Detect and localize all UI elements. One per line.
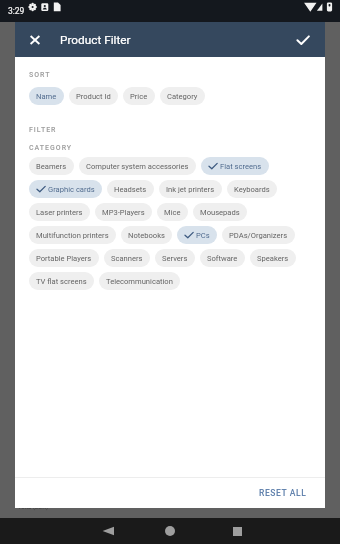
staticText: MP3-Players [102, 208, 145, 217]
button[interactable]: Mice [157, 203, 188, 221]
staticText: Notebooks [128, 231, 165, 240]
button[interactable]: Graphic cards [29, 180, 102, 198]
staticText: Total (EUR) [18, 503, 49, 510]
button[interactable]: Name [29, 87, 64, 105]
button[interactable]: Flat screens [201, 157, 269, 175]
button[interactable]: Close [19, 24, 50, 55]
staticText: Software [207, 254, 238, 263]
button[interactable]: Speakers [250, 249, 296, 267]
button[interactable]: Home [157, 518, 183, 544]
button[interactable]: Software [200, 249, 245, 267]
button[interactable]: Laser printers [29, 203, 90, 221]
button[interactable]: PDAs/Organizers [222, 226, 295, 244]
staticText: Laser printers [36, 208, 83, 217]
button[interactable]: Keyboards [227, 180, 277, 198]
staticText: RESET ALL [259, 488, 307, 498]
button[interactable]: Headsets [107, 180, 154, 198]
button[interactable]: Multifunction printers [29, 226, 116, 244]
staticText: Speakers [257, 254, 289, 263]
button[interactable]: Recents [224, 518, 250, 544]
button[interactable]: Portable Players [29, 249, 99, 267]
button[interactable]: MP3-Players [95, 203, 152, 221]
button[interactable]: Beamers [29, 157, 74, 175]
staticText: TV flat screens [36, 277, 87, 286]
staticText: Scanners [111, 254, 143, 263]
button[interactable]: Telecommunication [99, 272, 180, 290]
staticText: FILTER [29, 126, 57, 134]
staticText: Beamers [36, 162, 67, 171]
staticText: Computer system accessories [86, 162, 189, 171]
button[interactable]: RESET ALL [253, 483, 313, 503]
button[interactable]: Category [160, 87, 205, 105]
staticText: Multifunction printers [36, 231, 109, 240]
button[interactable]: TV flat screens [29, 272, 94, 290]
staticText: Graphic cards [48, 185, 95, 194]
button[interactable]: Servers [155, 249, 195, 267]
staticText: PCs [196, 231, 210, 240]
staticText: Servers [162, 254, 188, 263]
staticText: Telecommunication [106, 277, 173, 286]
staticText: Name [36, 92, 57, 101]
button[interactable]: Back [95, 518, 121, 544]
staticText: Product Filter [60, 33, 131, 47]
staticText: PDAs/Organizers [229, 231, 288, 240]
staticText: Price [130, 92, 148, 101]
staticText: Product Id [76, 92, 111, 101]
staticText: Mice [164, 208, 181, 217]
staticText: CATEGORY [29, 144, 73, 152]
staticText: Category [167, 92, 198, 101]
staticText: Headsets [114, 185, 147, 194]
button[interactable]: Product Id [69, 87, 118, 105]
button[interactable]: PCs [177, 226, 217, 244]
button[interactable]: Scanners [104, 249, 150, 267]
button[interactable]: Ink jet printers [159, 180, 222, 198]
staticText: Flat screens [220, 162, 262, 171]
button[interactable]: Apply [287, 24, 318, 55]
staticText: Ink jet printers [166, 185, 215, 194]
staticText: Portable Players [36, 254, 92, 263]
button[interactable]: Notebooks [121, 226, 172, 244]
button[interactable]: Computer system accessories [79, 157, 196, 175]
staticText: 3:29 [8, 6, 25, 16]
staticText: SORT [29, 71, 51, 79]
button[interactable]: Mousepads [193, 203, 247, 221]
button[interactable]: Price [123, 87, 155, 105]
staticText: Keyboards [234, 185, 270, 194]
staticText: Mousepads [200, 208, 240, 217]
